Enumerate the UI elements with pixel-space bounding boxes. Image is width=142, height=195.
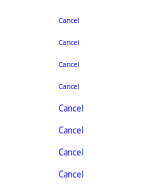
staticText: Cancel (58, 169, 83, 180)
staticText: Cancel (58, 103, 83, 114)
staticText: Cancel (58, 60, 79, 69)
staticText: Cancel (58, 38, 79, 47)
staticText: Cancel (58, 82, 79, 91)
staticText: Cancel (58, 147, 83, 158)
staticText: Cancel (58, 125, 83, 136)
staticText: Cancel (58, 16, 79, 25)
